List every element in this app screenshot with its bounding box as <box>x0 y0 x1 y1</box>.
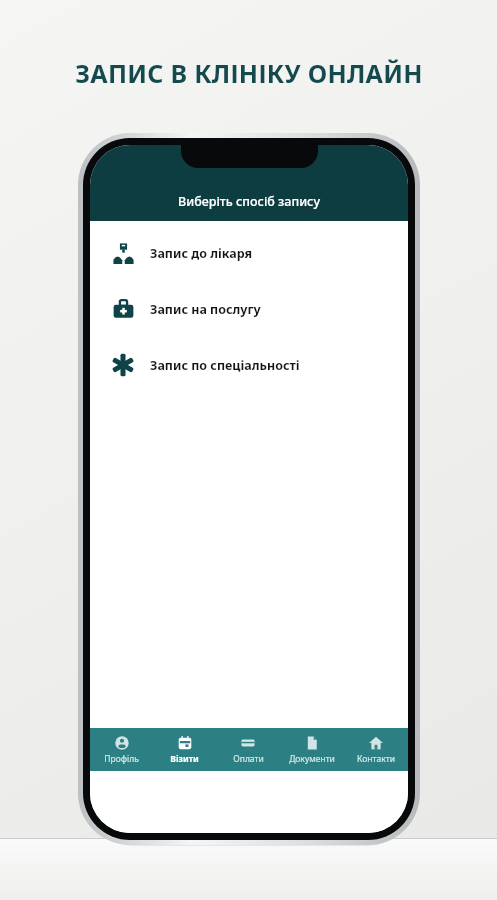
staticText: Запис на послугу <box>150 301 261 318</box>
button[interactable]: Документи <box>280 728 344 771</box>
staticText: Візити <box>170 753 199 765</box>
staticText: Запис до лікаря <box>150 245 253 262</box>
staticText: Виберіть спосіб запису <box>178 193 320 210</box>
button[interactable]: Оплати <box>216 728 280 771</box>
button[interactable]: Запис на послугу <box>90 289 408 329</box>
staticText: Контакти <box>357 753 395 765</box>
staticText: Оплати <box>233 753 264 765</box>
button[interactable]: Запис до лікаря <box>90 233 408 273</box>
staticText: Документи <box>289 753 335 765</box>
button[interactable]: Запис по спеціальності <box>90 345 408 385</box>
button[interactable]: Контакти <box>344 728 408 771</box>
staticText: Запис по спеціальності <box>150 357 300 374</box>
button[interactable]: Профіль <box>90 728 153 771</box>
button[interactable]: Візити <box>153 728 216 771</box>
staticText: ЗАПИС В КЛІНІКУ ОНЛАЙН <box>75 56 423 90</box>
staticText: Профіль <box>104 753 139 765</box>
